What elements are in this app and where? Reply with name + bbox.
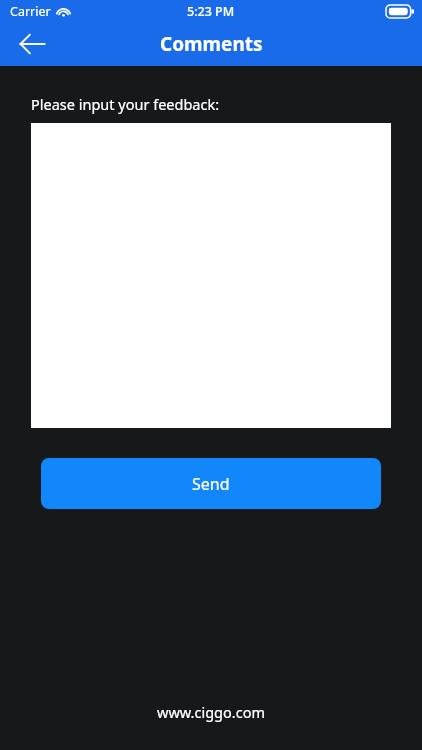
staticText: Comments (160, 31, 263, 57)
staticText: www.ciggo.com (157, 702, 265, 722)
button[interactable]: Back (10, 22, 54, 66)
button[interactable]: Send (41, 458, 381, 509)
staticText: 5:23 PM (187, 3, 235, 20)
staticText: Carrier (10, 3, 51, 20)
staticText: Please input your feedback: (31, 94, 220, 114)
staticText: Send (192, 473, 230, 495)
